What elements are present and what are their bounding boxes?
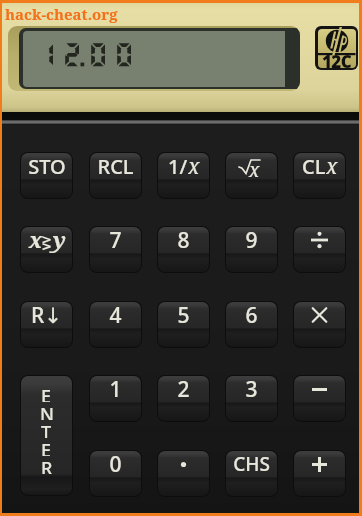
staticText: 1 (109, 375, 122, 403)
staticText: N (40, 402, 54, 420)
staticText: 8 (177, 226, 190, 254)
staticText: R (41, 456, 53, 474)
staticText: CHS (233, 451, 270, 477)
staticText: 3 (245, 375, 258, 403)
staticText: 12C (322, 50, 352, 70)
button[interactable]: 8 (157, 226, 210, 273)
staticText: 4 (109, 301, 122, 329)
button[interactable]: Minus (293, 375, 346, 422)
staticText: y (53, 226, 66, 254)
button[interactable]: Square root (225, 152, 278, 199)
staticText: 0 (109, 450, 122, 478)
staticText: STO (28, 153, 66, 180)
button[interactable]: 2 (157, 375, 210, 422)
button[interactable]: 3 (225, 375, 278, 422)
other: HP 12C (315, 26, 358, 70)
button[interactable]: R↓ (20, 301, 73, 348)
staticText: 7 (109, 226, 122, 254)
staticText: x (326, 152, 338, 180)
button[interactable]: Multiply (293, 301, 346, 348)
staticText: 9 (245, 226, 258, 254)
button[interactable]: Decimal point (157, 450, 210, 497)
button[interactable]: 6 (225, 301, 278, 348)
staticText: 6 (245, 301, 258, 329)
staticText: R↓ (31, 301, 62, 329)
staticText: x (249, 157, 260, 183)
button[interactable]: 1 (89, 375, 142, 422)
staticText: x (29, 226, 43, 254)
staticText: hack-cheat.org (5, 4, 118, 24)
button[interactable]: CL (293, 152, 346, 199)
staticText: 2 (177, 375, 190, 403)
button[interactable]: 0 (89, 450, 142, 497)
staticText: E (41, 438, 52, 456)
button[interactable]: 1/ (157, 152, 210, 199)
button[interactable]: Divide (293, 226, 346, 273)
staticText: CL (302, 153, 326, 180)
button[interactable]: Swap x and y (20, 226, 73, 273)
staticText: RCL (97, 153, 134, 180)
button[interactable]: CHS (225, 450, 278, 497)
button[interactable]: STO (20, 152, 73, 199)
button[interactable]: 7 (89, 226, 142, 273)
staticText: T (41, 420, 52, 438)
staticText: 1/ (168, 153, 188, 180)
button[interactable]: RCL (89, 152, 142, 199)
staticText: 5 (177, 301, 190, 329)
button[interactable]: 4 (89, 301, 142, 348)
staticText: E (41, 384, 52, 402)
button[interactable]: 5 (157, 301, 210, 348)
button[interactable]: Plus (293, 450, 346, 497)
staticText: x (188, 152, 200, 180)
button[interactable]: E (20, 375, 73, 496)
button[interactable]: 9 (225, 226, 278, 273)
